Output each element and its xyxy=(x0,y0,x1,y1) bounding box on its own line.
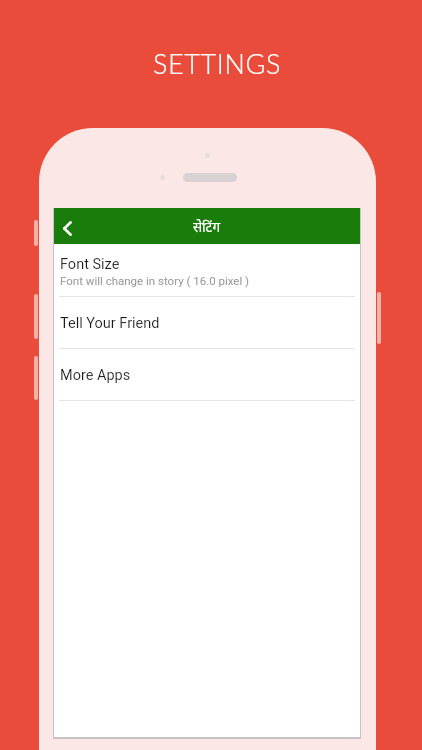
staticText: सेटिंग xyxy=(193,218,221,236)
button[interactable]: Back xyxy=(54,208,81,244)
staticText: Tell Your Friend xyxy=(60,315,160,332)
staticText: Font will change in story ( 16.0 pixel ) xyxy=(60,274,250,287)
button[interactable]: Font Size xyxy=(54,245,360,297)
button[interactable]: Tell Your Friend xyxy=(54,297,360,349)
staticText: More Apps xyxy=(60,367,131,384)
button[interactable]: More Apps xyxy=(54,349,360,401)
staticText: Font Size xyxy=(60,256,120,273)
staticText: SETTINGS xyxy=(6,47,422,79)
